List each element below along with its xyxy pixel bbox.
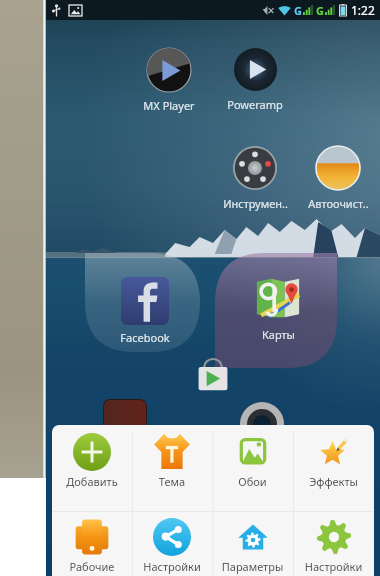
staticText: 1:22 xyxy=(351,2,375,18)
button[interactable]: Карты xyxy=(242,274,314,342)
button[interactable]: Настройки xyxy=(293,512,374,576)
button[interactable]: Добавить xyxy=(52,425,132,511)
button[interactable]: Настройки xyxy=(132,512,212,576)
button[interactable]: Инструмен.. xyxy=(219,145,291,211)
staticText: Инструмен.. xyxy=(223,196,288,211)
staticText: Параметры xyxy=(212,559,293,574)
button[interactable]: Тема xyxy=(132,425,212,511)
staticText: Тема xyxy=(132,474,212,489)
staticText: Facebook xyxy=(120,330,170,345)
staticText: MX Player xyxy=(143,98,195,113)
button[interactable]: Обои xyxy=(212,425,293,511)
staticText: Рабочие xyxy=(52,559,132,574)
button[interactable]: Автоочист.. xyxy=(302,145,374,211)
staticText: Эффекты xyxy=(293,474,374,489)
staticText: G xyxy=(294,3,302,18)
staticText: Карты xyxy=(262,327,295,342)
button[interactable]: MX Player xyxy=(133,47,205,113)
staticText: Обои xyxy=(212,474,293,489)
staticText: G xyxy=(316,3,324,18)
button[interactable]: Poweramp xyxy=(219,47,291,112)
button[interactable]: Эффекты xyxy=(293,425,374,511)
button[interactable]: Facebook xyxy=(109,277,181,345)
button[interactable]: Рабочие xyxy=(52,512,132,576)
staticText: Автоочист.. xyxy=(308,196,369,211)
staticText: Настройки xyxy=(293,559,374,574)
staticText: Настройки xyxy=(132,559,212,574)
button[interactable]: Параметры xyxy=(212,512,293,576)
staticText: Добавить xyxy=(52,474,132,489)
staticText: Poweramp xyxy=(227,97,283,112)
